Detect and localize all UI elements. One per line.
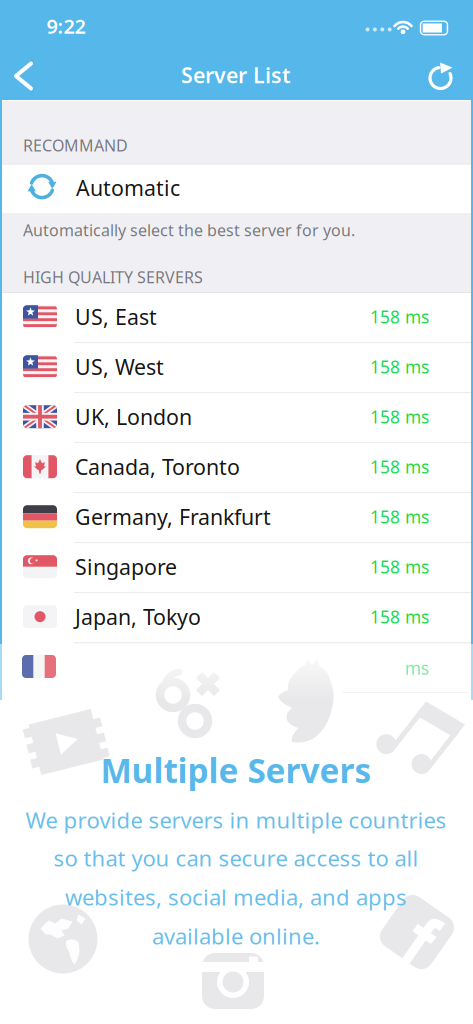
staticText: so that you can secure access to all [53, 843, 418, 873]
staticText: Server List [181, 61, 291, 89]
button[interactable]: Japan, Tokyo [2, 593, 471, 643]
staticText: 158 ms [370, 455, 429, 478]
staticText: UK, London [75, 402, 192, 431]
staticText: US, East [75, 302, 157, 331]
button[interactable]: Singapore [2, 543, 471, 593]
staticText: Japan, Tokyo [75, 602, 201, 631]
staticText: Singapore [75, 552, 177, 581]
staticText: 158 ms [370, 555, 429, 578]
staticText: HIGH QUALITY SERVERS [23, 266, 203, 288]
staticText: RECOMMAND [23, 135, 128, 156]
staticText: 158 ms [370, 355, 429, 378]
staticText: Germany, Frankfurt [75, 502, 271, 531]
staticText: 158 ms [370, 305, 429, 328]
button[interactable]: Germany, Frankfurt [2, 493, 471, 543]
button[interactable]: UK, London [2, 393, 471, 443]
button[interactable]: Canada, Toronto [2, 443, 471, 493]
staticText: 158 ms [370, 505, 429, 528]
staticText: websites, social media, and apps [65, 882, 407, 912]
staticText: 158 ms [370, 605, 429, 628]
button[interactable]: US, West [2, 343, 471, 393]
staticText: Multiple Servers [100, 748, 371, 792]
staticText: Automatically select the best server for… [23, 219, 355, 241]
staticText: ms [405, 656, 429, 679]
staticText: Automatic [76, 173, 180, 202]
staticText: 9:22 [46, 13, 85, 39]
button[interactable]: Refresh [428, 62, 453, 90]
button[interactable]: US, East [2, 293, 471, 343]
staticText: available online. [152, 921, 320, 951]
staticText: 158 ms [370, 405, 429, 428]
staticText: US, West [75, 352, 164, 381]
button[interactable]: Automatic [2, 165, 471, 214]
staticText: We provide servers in multiple countries [25, 805, 446, 835]
staticText: Canada, Toronto [75, 452, 240, 481]
button[interactable]: Back [14, 62, 34, 90]
